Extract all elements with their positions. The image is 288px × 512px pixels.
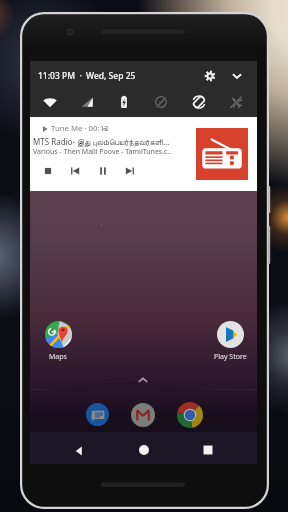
button[interactable]: Back [72,444,86,458]
button[interactable]: Do not disturb [153,94,169,110]
button[interactable]: Mobile signal [79,94,95,110]
button[interactable]: Auto rotate [191,94,207,110]
button[interactable]: Next [123,164,137,178]
button[interactable]: Gmail [131,403,155,427]
button[interactable]: Wi-Fi [42,94,58,110]
button[interactable]: Recents [201,443,215,457]
staticText: MTS Radio- இது புலம்பெயர்ந்தவர்களி… [33,136,198,147]
staticText: 11:03 PM · Wed, Sep 25 [38,70,136,82]
button[interactable]: Previous [68,164,82,178]
button[interactable]: Battery [116,94,132,110]
button[interactable]: Stop [41,164,55,178]
button[interactable]: Messages [86,403,109,426]
button[interactable]: Settings [202,68,218,84]
button[interactable]: Airplane mode [228,94,244,110]
staticText: Maps [49,352,67,362]
button[interactable]: Tune Me · 00:12 [30,117,257,191]
button[interactable]: Play Store [210,321,250,362]
button[interactable]: Pause [96,164,110,178]
button[interactable]: Chrome [177,402,203,428]
staticText: Various - Then Malli Poove - TamilTunes.… [33,147,198,157]
staticText: Tune Me · 00:12 [51,123,109,134]
button[interactable]: Maps [38,321,78,362]
button[interactable]: Expand quick settings [229,68,245,84]
button[interactable]: Open app drawer [136,373,150,387]
button[interactable]: Home [137,443,151,457]
staticText: Play Store [214,352,247,362]
